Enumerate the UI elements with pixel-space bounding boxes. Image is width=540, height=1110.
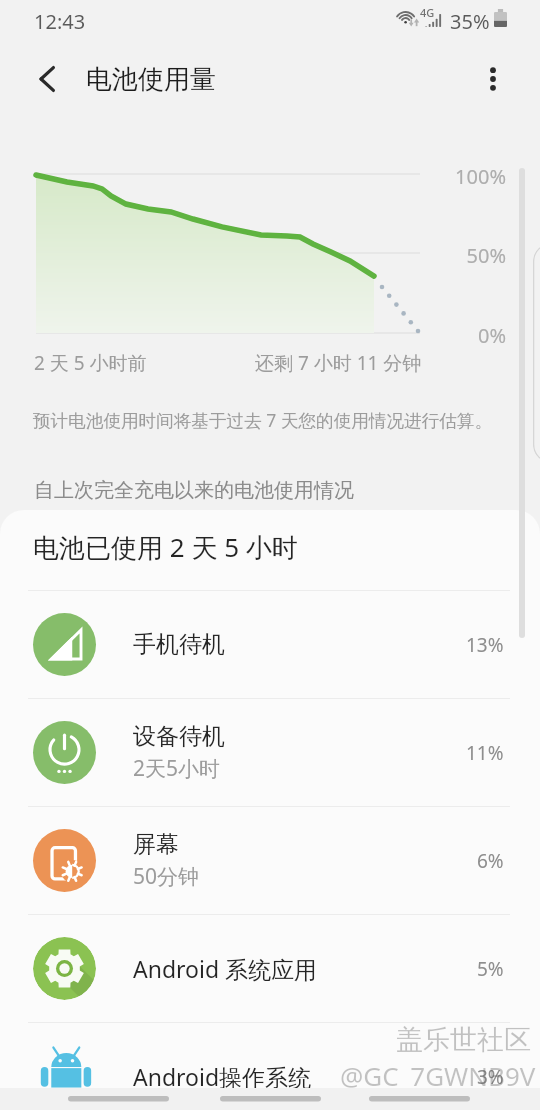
- staticText: 35%: [450, 8, 490, 35]
- staticText: 11%: [466, 740, 504, 766]
- button[interactable]: 手机待机: [0, 591, 540, 698]
- staticText: 50分钟: [133, 862, 200, 891]
- button[interactable]: 屏幕: [0, 807, 540, 914]
- staticText: 手机待机: [133, 630, 225, 659]
- staticText: 电池已使用 2 天 5 小时: [33, 529, 298, 565]
- staticText: 0%: [406, 322, 506, 349]
- staticText: 3%: [477, 1064, 504, 1090]
- staticText: 12:43: [34, 8, 86, 35]
- staticText: 2 天 5 小时前: [34, 350, 147, 376]
- staticText: 4G: [420, 5, 435, 20]
- staticText: 还剩 7 小时 11 分钟: [255, 350, 422, 376]
- button[interactable]: Android操作系统: [0, 1023, 540, 1110]
- staticText: 100%: [406, 163, 506, 190]
- staticText: 屏幕: [133, 830, 179, 859]
- staticText: 盖乐世社区: [396, 1023, 531, 1057]
- button[interactable]: More options: [458, 44, 528, 114]
- button[interactable]: Back: [12, 44, 82, 114]
- staticText: 自上次完全充电以来的电池使用情况: [34, 478, 354, 503]
- staticText: 5%: [477, 956, 504, 982]
- staticText: 50%: [406, 242, 506, 269]
- button[interactable]: 设备待机: [0, 699, 540, 806]
- staticText: 6%: [477, 848, 504, 874]
- staticText: 预计电池使用时间将基于过去 7 天您的使用情况进行估算。: [33, 408, 493, 432]
- staticText: @GC_7GWNB9V: [340, 1058, 536, 1093]
- staticText: Android操作系统: [133, 1061, 312, 1092]
- button[interactable]: Android 系统应用: [0, 915, 540, 1022]
- staticText: 电池使用量: [86, 63, 216, 96]
- staticText: Android 系统应用: [133, 953, 318, 984]
- staticText: 13%: [466, 632, 504, 658]
- staticText: 2天5小时: [133, 754, 221, 783]
- staticText: 设备待机: [133, 722, 225, 751]
